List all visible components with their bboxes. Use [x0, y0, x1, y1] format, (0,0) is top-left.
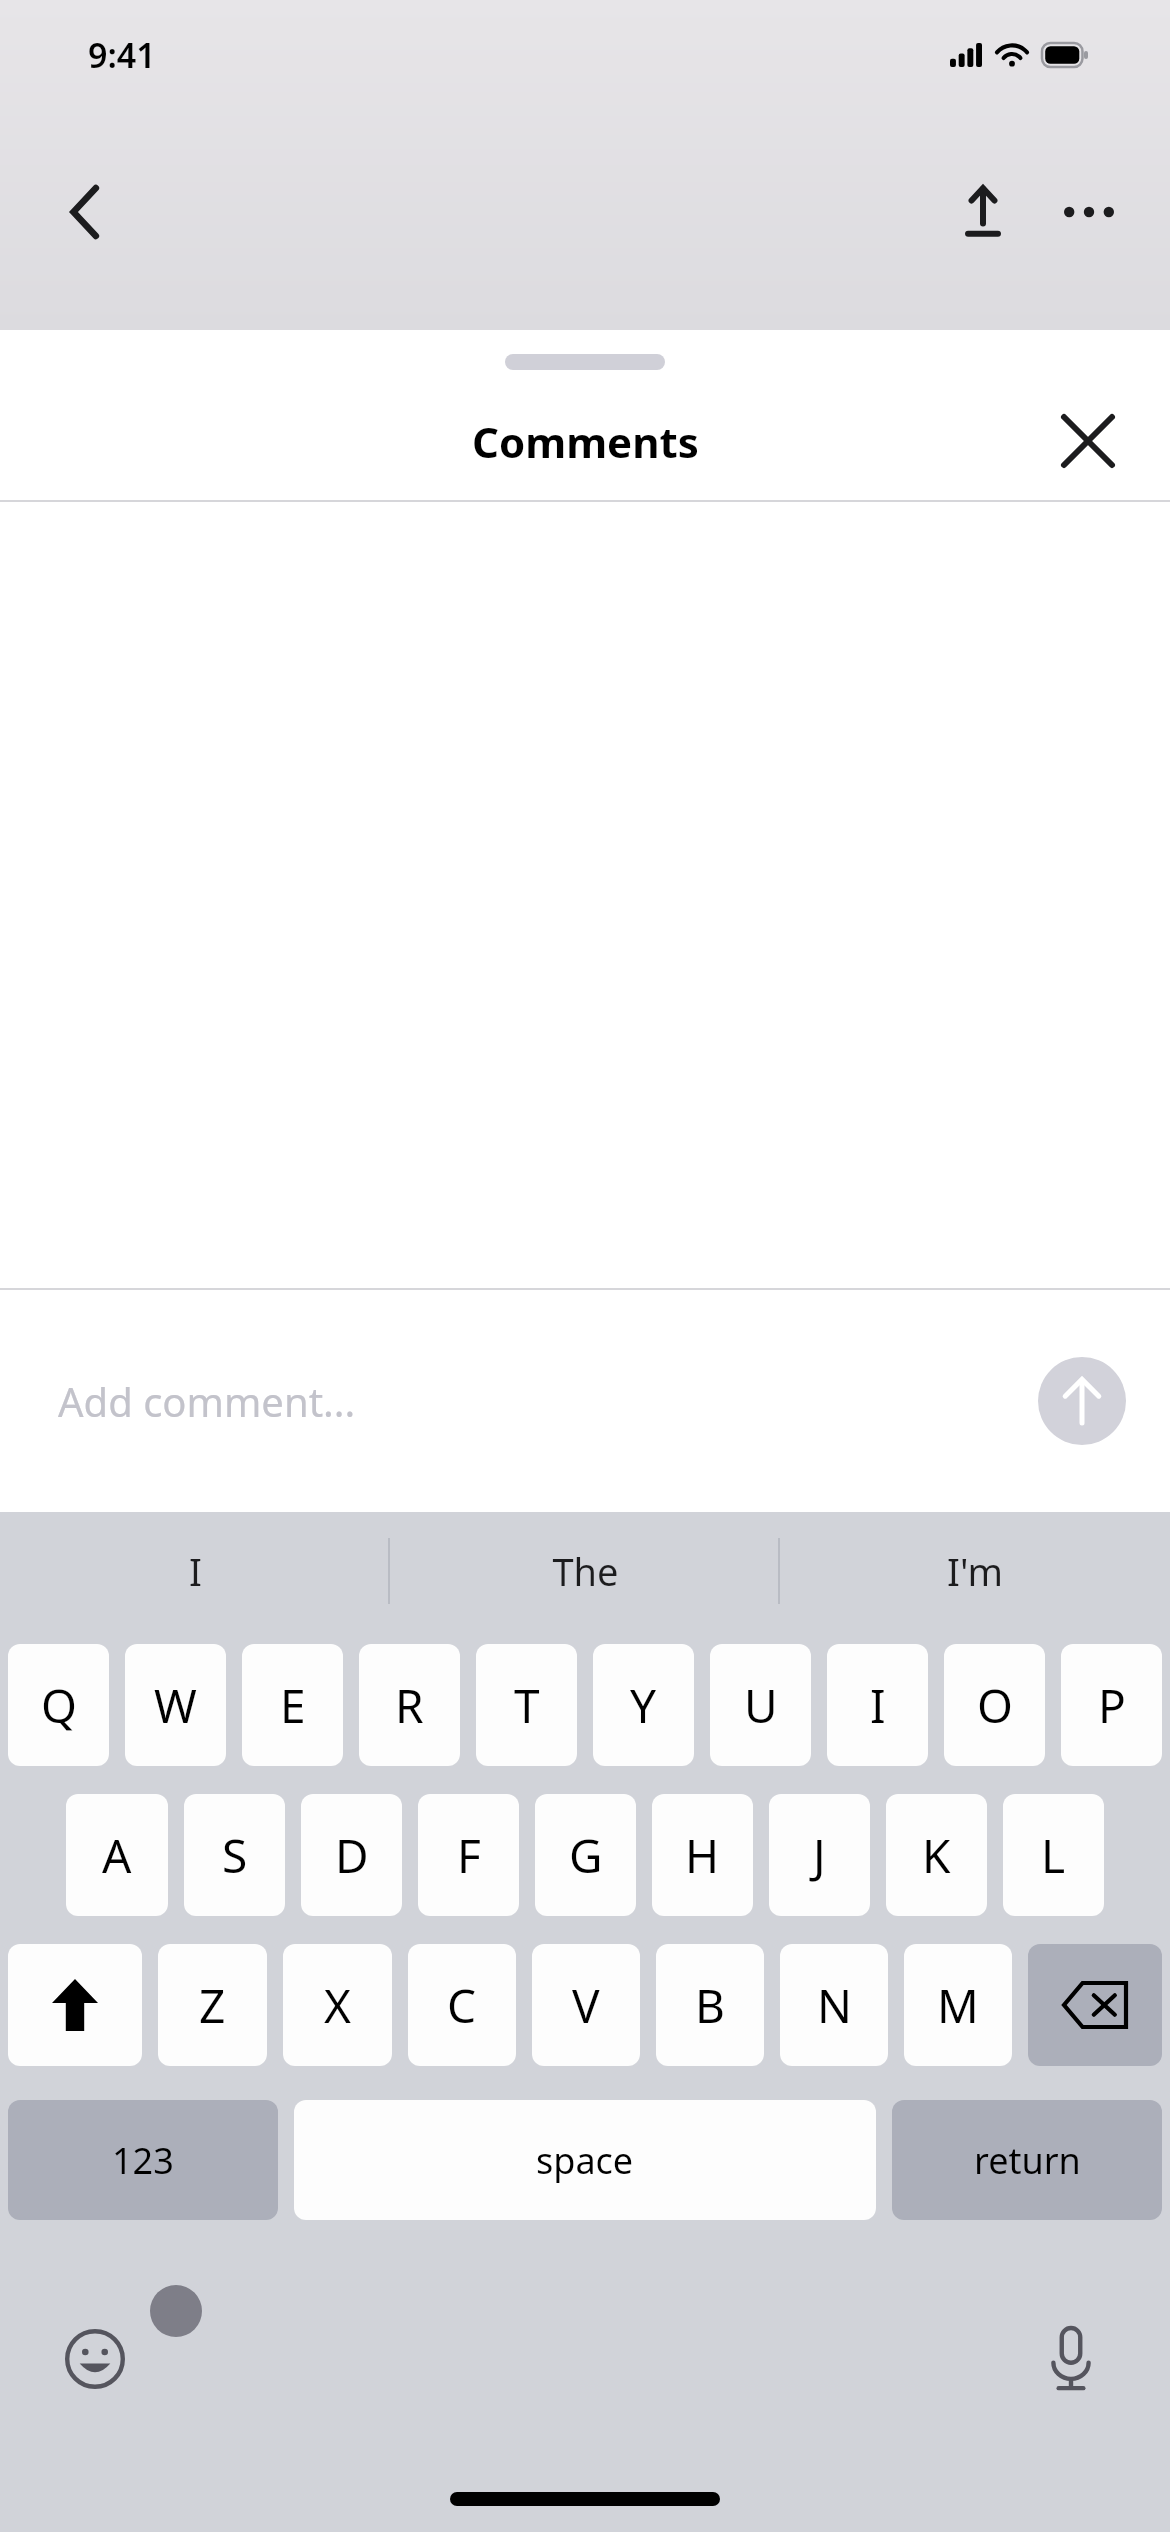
- staticText: The: [552, 1545, 619, 1597]
- button[interactable]: Y: [593, 1644, 694, 1766]
- staticText: I: [189, 1545, 202, 1597]
- button[interactable]: P: [1061, 1644, 1162, 1766]
- button[interactable]: space: [294, 2100, 876, 2220]
- button[interactable]: 123: [8, 2100, 278, 2220]
- staticText: P: [1098, 1674, 1126, 1737]
- staticText: E: [280, 1674, 306, 1737]
- button[interactable]: W: [125, 1644, 226, 1766]
- staticText: return: [974, 2136, 1081, 2185]
- staticText: Z: [199, 1974, 226, 2037]
- button[interactable]: L: [1003, 1794, 1104, 1916]
- button[interactable]: U: [710, 1644, 811, 1766]
- button[interactable]: C: [408, 1944, 516, 2066]
- button[interactable]: F: [418, 1794, 519, 1916]
- button[interactable]: K: [886, 1794, 987, 1916]
- staticText: T: [514, 1674, 540, 1737]
- button[interactable]: Shift: [8, 1944, 142, 2066]
- button[interactable]: I: [0, 1512, 390, 1630]
- staticText: L: [1041, 1824, 1066, 1887]
- staticText: I: [870, 1674, 886, 1737]
- button[interactable]: return: [892, 2100, 1162, 2220]
- button[interactable]: N: [780, 1944, 888, 2066]
- staticText: U: [744, 1674, 778, 1737]
- button[interactable]: X: [283, 1944, 392, 2066]
- staticText: M: [937, 1974, 979, 2037]
- staticText: D: [335, 1824, 369, 1887]
- staticText: H: [685, 1824, 720, 1887]
- staticText: G: [569, 1824, 603, 1887]
- button[interactable]: B: [656, 1944, 764, 2066]
- button[interactable]: M: [904, 1944, 1012, 2066]
- staticText: A: [102, 1824, 132, 1887]
- staticText: R: [395, 1674, 424, 1737]
- button[interactable]: The: [390, 1512, 780, 1630]
- button[interactable]: Share: [940, 169, 1026, 255]
- staticText: O: [977, 1674, 1013, 1737]
- staticText: space: [536, 2136, 634, 2185]
- button[interactable]: G: [535, 1794, 636, 1916]
- staticText: Comments: [472, 413, 699, 470]
- staticText: Add comment...: [58, 1374, 1038, 1428]
- button[interactable]: Backspace: [1028, 1944, 1162, 2066]
- button[interactable]: Add comment...: [0, 1290, 1170, 1512]
- staticText: W: [154, 1674, 197, 1737]
- button[interactable]: I: [827, 1644, 928, 1766]
- button[interactable]: Close: [1046, 399, 1130, 483]
- staticText: X: [324, 1974, 351, 2037]
- staticText: B: [695, 1974, 725, 2037]
- button[interactable]: Dictation: [1028, 2316, 1114, 2402]
- staticText: K: [922, 1824, 951, 1887]
- button[interactable]: Z: [158, 1944, 267, 2066]
- button[interactable]: More options: [1046, 169, 1132, 255]
- button[interactable]: D: [301, 1794, 402, 1916]
- staticText: J: [813, 1824, 826, 1887]
- button[interactable]: Q: [8, 1644, 109, 1766]
- staticText: C: [447, 1974, 477, 2037]
- button[interactable]: Send: [1038, 1357, 1126, 1445]
- staticText: Q: [41, 1674, 77, 1737]
- button[interactable]: I'm: [780, 1512, 1170, 1630]
- button[interactable]: S: [184, 1794, 285, 1916]
- staticText: 123: [112, 2136, 174, 2185]
- staticText: I'm: [947, 1545, 1003, 1597]
- staticText: N: [817, 1974, 852, 2037]
- staticText: 9:41: [88, 32, 156, 78]
- button[interactable]: Emoji: [52, 2316, 138, 2402]
- button[interactable]: A: [66, 1794, 168, 1916]
- button[interactable]: V: [532, 1944, 640, 2066]
- button[interactable]: J: [769, 1794, 870, 1916]
- staticText: F: [457, 1824, 481, 1887]
- button[interactable]: E: [242, 1644, 343, 1766]
- staticText: Y: [630, 1674, 657, 1737]
- button[interactable]: Back: [42, 169, 128, 255]
- button[interactable]: T: [476, 1644, 577, 1766]
- button[interactable]: R: [359, 1644, 460, 1766]
- button[interactable]: O: [944, 1644, 1045, 1766]
- staticText: S: [222, 1824, 248, 1887]
- staticText: V: [572, 1974, 600, 2037]
- button[interactable]: H: [652, 1794, 753, 1916]
